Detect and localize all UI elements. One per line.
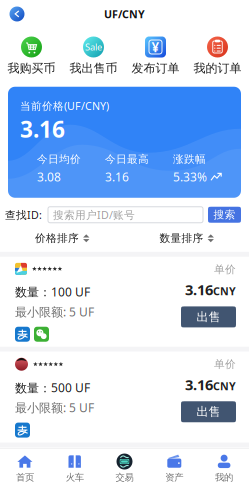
button[interactable]: 火车 (50, 453, 100, 483)
staticText: 数量：100 UF (15, 284, 90, 300)
button[interactable]: 数量排序 (124, 232, 249, 245)
staticText: 3.16 (20, 114, 65, 144)
staticText: 我购买币 (7, 61, 55, 76)
staticText: 当前价格(UF/CNY) (20, 99, 109, 113)
staticText: 我的 (215, 471, 233, 483)
staticText: 出售 (196, 310, 220, 324)
staticText: 3.16 (185, 375, 213, 394)
staticText: 我出售币 (69, 61, 117, 76)
button[interactable]: 出售 (181, 401, 236, 422)
button[interactable]: 搜索 (208, 207, 241, 223)
staticText: 搜索 (213, 208, 235, 221)
staticText: 单价 (214, 358, 236, 371)
button[interactable]: 交易 (100, 453, 149, 483)
button[interactable]: 价格排序 (0, 232, 124, 245)
staticText: 涨跌幅 (173, 153, 206, 166)
staticText: 最小限额: 5 UF (15, 304, 94, 320)
button[interactable]: 资产 (149, 453, 199, 483)
staticText: 发布订单 (131, 61, 179, 76)
staticText: 数量排序 (160, 232, 204, 245)
button[interactable]: 出售 (181, 306, 236, 327)
staticText: 最小限额: 5 UF (15, 400, 94, 415)
staticText: 首页 (16, 471, 34, 483)
staticText: 出售 (196, 404, 220, 419)
staticText: Sale (85, 41, 102, 53)
staticText: 搜索用户ID/账号 (53, 208, 135, 222)
staticText: 5.33% (173, 169, 207, 185)
button[interactable]: 我购买币 (0, 36, 62, 76)
staticText: 3.08 (37, 169, 61, 185)
button[interactable]: 首页 (0, 453, 50, 483)
staticText: 今日最高 (105, 153, 149, 166)
button[interactable]: Back (6, 3, 28, 25)
staticText: 单价 (214, 263, 236, 276)
staticText: 我的订单 (193, 61, 241, 76)
staticText: CNY (213, 379, 236, 393)
staticText: 火车 (66, 471, 84, 483)
staticText: ¥ (151, 38, 159, 56)
staticText: 交易 (115, 471, 133, 483)
staticText: CNY (213, 284, 236, 298)
staticText: 数量：500 UF (15, 380, 90, 396)
staticText: 3.16 (105, 169, 129, 185)
button[interactable]: ¥ (124, 36, 186, 76)
staticText: UF/CNY (104, 7, 145, 21)
staticText: 价格排序 (35, 232, 79, 245)
button[interactable]: 我的 (199, 453, 249, 483)
staticText: 3.16 (185, 280, 213, 299)
button[interactable]: 我的订单 (186, 36, 248, 76)
button[interactable]: Sale (62, 36, 124, 76)
staticText: 资产 (165, 471, 183, 483)
staticText: 今日均价 (37, 153, 81, 166)
staticText: 查找ID: (5, 208, 42, 222)
